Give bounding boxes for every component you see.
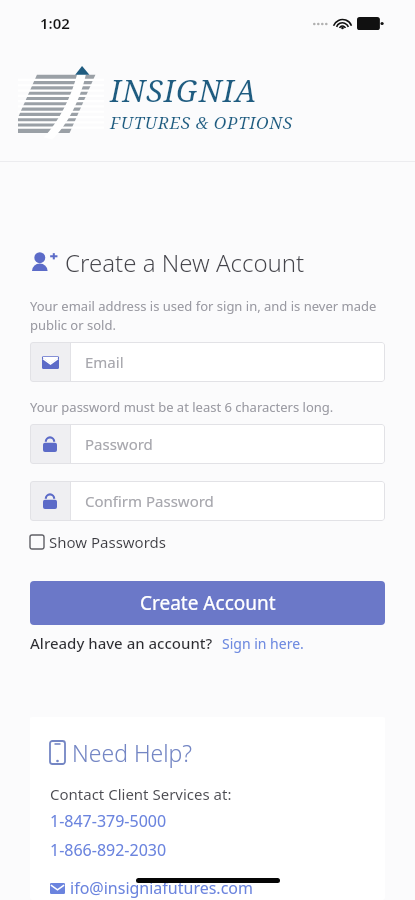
staticText: ifo@insigniafutures.com bbox=[70, 877, 253, 899]
button[interactable]: Show Passwords bbox=[30, 530, 167, 554]
button[interactable]: Confirm Password bbox=[30, 481, 385, 521]
button[interactable]: Email bbox=[30, 342, 385, 382]
staticText: Sign in here. bbox=[222, 634, 304, 653]
staticText: FUTURES & OPTIONS bbox=[110, 111, 293, 134]
button[interactable]: Password bbox=[30, 424, 385, 464]
staticText: 1-866-892-2030 bbox=[50, 839, 167, 861]
staticText: Show Passwords bbox=[49, 532, 167, 552]
button[interactable]: Create Account bbox=[30, 581, 385, 625]
button[interactable]: 1-866-892-2030 bbox=[50, 839, 167, 861]
staticText: Your password must be at least 6 charact… bbox=[30, 398, 334, 416]
button[interactable]: ifo@insigniafutures.com bbox=[50, 877, 253, 899]
staticText: Confirm Password bbox=[85, 491, 214, 511]
staticText: Need Help? bbox=[72, 737, 193, 768]
button[interactable]: 1-847-379-5000 bbox=[50, 810, 167, 832]
staticText: Create a New Account bbox=[65, 246, 305, 279]
staticText: Contact Client Services at: bbox=[50, 784, 232, 804]
staticText: Already have an account? bbox=[30, 633, 213, 653]
staticText: Email bbox=[85, 352, 124, 372]
staticText: 1-847-379-5000 bbox=[50, 810, 167, 832]
staticText: Your email address is used for sign in, … bbox=[30, 297, 377, 334]
staticText: 1:02 bbox=[40, 13, 70, 33]
staticText: Create Account bbox=[140, 590, 276, 616]
staticText: Password bbox=[85, 434, 153, 454]
button[interactable]: Sign in here. bbox=[222, 634, 304, 653]
staticText: INSIGNIA bbox=[110, 70, 258, 111]
